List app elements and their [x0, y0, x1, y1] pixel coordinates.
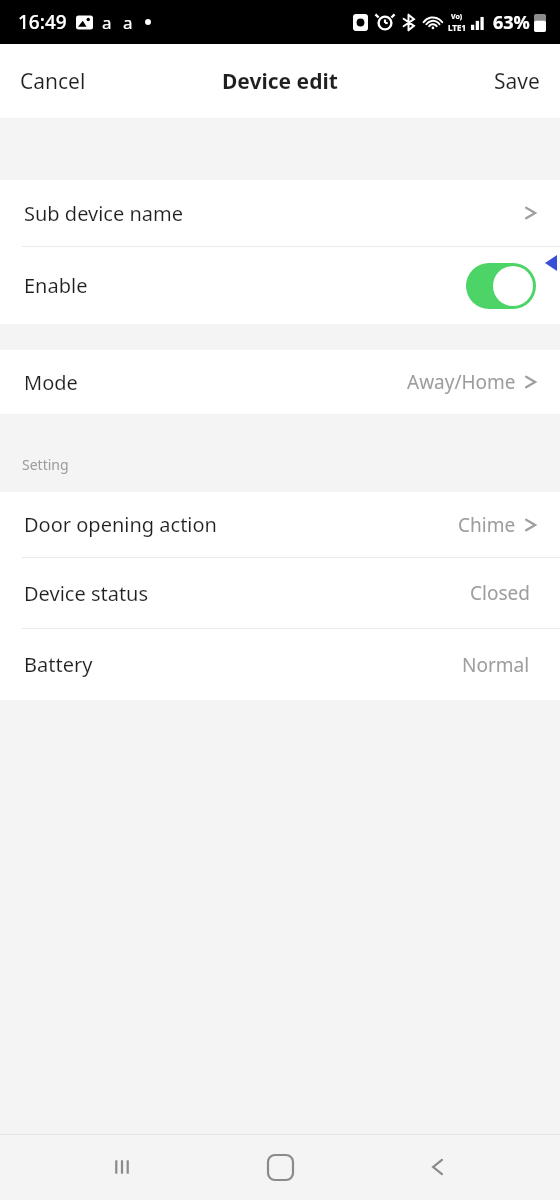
- staticText: Cancel: [20, 67, 86, 96]
- staticText: 63%: [493, 10, 530, 35]
- button[interactable]: Enable: [0, 247, 560, 324]
- button[interactable]: Door opening action: [0, 492, 560, 557]
- button[interactable]: Save: [474, 55, 560, 108]
- staticText: Normal: [462, 652, 530, 678]
- button[interactable]: Device status: [0, 558, 560, 628]
- staticText: Chime: [458, 512, 516, 538]
- staticText: Battery: [24, 651, 93, 678]
- staticText: Device edit: [222, 67, 338, 96]
- staticText: Vo): [451, 12, 463, 22]
- button[interactable]: Cancel: [0, 55, 106, 108]
- button[interactable]: Battery: [0, 629, 560, 700]
- staticText: Enable: [24, 272, 88, 299]
- staticText: LTE1: [448, 22, 466, 33]
- staticText: Mode: [24, 369, 78, 396]
- button[interactable]: Sub device name: [0, 180, 560, 246]
- staticText: a: [102, 11, 112, 34]
- button[interactable]: Enable toggle: [466, 263, 536, 309]
- staticText: Setting: [22, 455, 69, 474]
- staticText: 16:49: [18, 9, 67, 35]
- button[interactable]: Recents: [88, 1134, 158, 1200]
- staticText: Device status: [24, 580, 149, 607]
- staticText: Closed: [470, 580, 530, 606]
- button[interactable]: Mode: [0, 350, 560, 414]
- staticText: Save: [494, 67, 540, 96]
- button[interactable]: Home: [245, 1134, 315, 1200]
- staticText: a: [123, 11, 133, 34]
- staticText: Sub device name: [24, 200, 183, 227]
- staticText: Door opening action: [24, 511, 217, 538]
- button[interactable]: Back: [403, 1134, 473, 1200]
- staticText: Away/Home: [407, 369, 516, 395]
